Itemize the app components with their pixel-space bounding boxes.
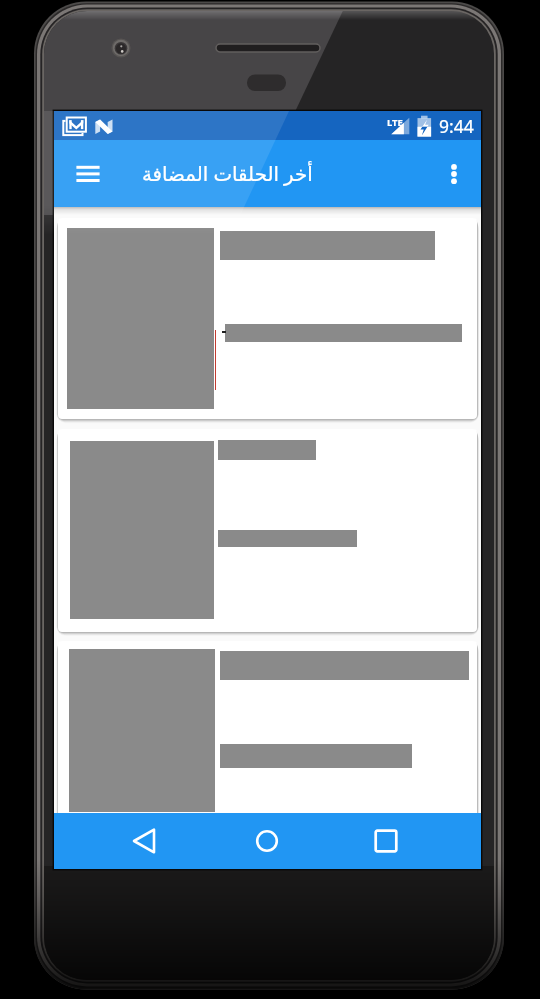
- staticText: LTE: [387, 116, 403, 129]
- staticText: 9:44: [439, 114, 474, 138]
- button[interactable]: Home: [241, 815, 293, 867]
- button[interactable]: [58, 218, 477, 419]
- button[interactable]: Recents: [360, 815, 412, 867]
- button[interactable]: More options: [430, 150, 478, 198]
- button[interactable]: [58, 641, 477, 814]
- button[interactable]: Menu: [64, 150, 112, 198]
- button[interactable]: Back: [123, 815, 175, 867]
- button[interactable]: [58, 429, 477, 632]
- staticText: أخر الحلقات المضافة: [142, 160, 313, 187]
